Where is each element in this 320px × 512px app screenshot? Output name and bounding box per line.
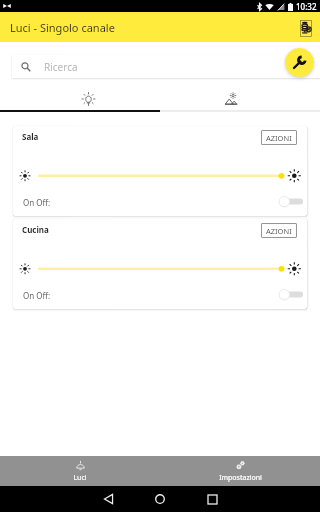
button[interactable]: Impostazioni bbox=[285, 48, 314, 77]
button[interactable]: Home bbox=[146, 486, 174, 512]
button[interactable]: AZIONI bbox=[261, 130, 297, 145]
button[interactable]: Ricerca bbox=[12, 55, 320, 78]
staticText: Ricerca bbox=[44, 60, 78, 74]
button[interactable]: Luci bbox=[0, 86, 160, 110]
button[interactable]: AZIONI bbox=[261, 223, 297, 238]
staticText: Luci - Singolo canale bbox=[10, 20, 115, 35]
staticText: Impostazioni bbox=[219, 473, 262, 483]
button[interactable]: Impostazioni bbox=[160, 456, 320, 486]
staticText: On Off: bbox=[23, 290, 51, 301]
staticText: Cucina bbox=[22, 224, 49, 235]
button[interactable]: Scenari bbox=[160, 86, 320, 110]
staticText: Luci bbox=[73, 473, 87, 483]
staticText: AZIONI bbox=[266, 226, 292, 236]
button[interactable]: On Off bbox=[279, 286, 303, 302]
button[interactable]: On Off bbox=[279, 193, 303, 209]
staticText: 10:32 bbox=[296, 1, 317, 12]
button[interactable]: Indietro bbox=[94, 486, 122, 512]
button[interactable]: Panoramica bbox=[198, 486, 226, 512]
staticText: AZIONI bbox=[266, 133, 292, 143]
button[interactable]: Luci bbox=[0, 456, 160, 486]
staticText: On Off: bbox=[23, 197, 51, 208]
staticText: Sala bbox=[22, 131, 39, 142]
button[interactable]: Cancella database bbox=[294, 16, 318, 40]
